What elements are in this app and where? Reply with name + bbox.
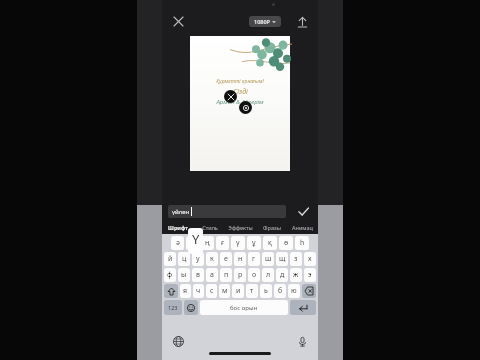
staticText: 1080P xyxy=(254,18,270,25)
button[interactable]: т xyxy=(246,284,258,298)
button[interactable]: ө xyxy=(279,236,293,250)
staticText: ә xyxy=(176,238,180,248)
button[interactable]: Фразы xyxy=(256,221,287,234)
staticText: ч xyxy=(196,286,201,296)
button[interactable]: ң xyxy=(201,236,214,250)
staticText: Сізді xyxy=(233,87,248,97)
staticText: қ xyxy=(268,238,272,248)
button[interactable]: Return xyxy=(290,300,316,315)
button[interactable]: ы xyxy=(178,268,190,282)
button[interactable]: у xyxy=(192,252,204,266)
button[interactable]: ж xyxy=(290,268,302,282)
button[interactable]: с xyxy=(206,284,217,298)
button[interactable]: қ xyxy=(263,236,277,250)
staticText: щ xyxy=(279,254,286,264)
button[interactable]: з xyxy=(290,252,302,266)
staticText: з xyxy=(294,254,298,264)
button[interactable]: Emoji xyxy=(184,300,198,315)
staticText: к xyxy=(210,254,214,264)
staticText: в xyxy=(196,270,200,280)
button[interactable]: н xyxy=(234,252,246,266)
button[interactable]: ц xyxy=(178,252,190,266)
button[interactable]: ү xyxy=(231,236,245,250)
staticText: ү xyxy=(236,238,240,248)
staticText: үйлен xyxy=(172,208,190,216)
button[interactable]: бос орын xyxy=(200,300,288,315)
staticText: э xyxy=(308,270,312,280)
staticText: а xyxy=(210,270,214,280)
button[interactable]: ф xyxy=(164,268,176,282)
button[interactable]: п xyxy=(220,268,232,282)
button[interactable]: э xyxy=(304,268,316,282)
button[interactable]: щ xyxy=(276,252,288,266)
staticText: ң xyxy=(205,238,210,248)
staticText: н xyxy=(238,254,243,264)
button[interactable]: ұ xyxy=(247,236,261,250)
staticText: бос орын xyxy=(230,304,258,312)
button[interactable]: й xyxy=(164,252,176,266)
staticText: й xyxy=(168,254,173,264)
staticText: ү xyxy=(191,238,195,248)
button[interactable]: Change keyboard xyxy=(170,333,186,349)
button[interactable]: к xyxy=(206,252,218,266)
button[interactable]: үйлен xyxy=(168,205,286,218)
button[interactable]: ч xyxy=(193,284,204,298)
button[interactable]: д xyxy=(276,268,288,282)
staticText: с xyxy=(210,286,214,296)
button[interactable]: Close xyxy=(169,12,187,30)
button[interactable]: ә xyxy=(171,236,184,250)
staticText: л xyxy=(266,270,271,280)
button[interactable]: я xyxy=(180,284,191,298)
button[interactable]: Delete layer xyxy=(224,90,237,103)
staticText: ғ xyxy=(221,238,225,248)
button[interactable]: Rotate layer xyxy=(239,101,252,114)
staticText: һ xyxy=(300,238,305,248)
button[interactable]: 1080P xyxy=(249,16,281,27)
button[interactable]: ю xyxy=(288,284,300,298)
button[interactable]: Numbers xyxy=(164,300,182,315)
button[interactable]: а xyxy=(206,268,218,282)
button[interactable]: б xyxy=(274,284,286,298)
button[interactable]: ү xyxy=(186,236,199,250)
button[interactable]: Эффекты xyxy=(225,221,256,234)
button[interactable]: р xyxy=(234,268,246,282)
button[interactable]: и xyxy=(232,284,244,298)
button[interactable]: Backspace xyxy=(302,284,316,298)
button[interactable]: е xyxy=(220,252,232,266)
button[interactable]: г xyxy=(248,252,260,266)
button[interactable]: м xyxy=(219,284,230,298)
staticText: я xyxy=(183,286,188,296)
staticText: ш xyxy=(265,254,272,264)
staticText: ө xyxy=(284,238,289,248)
staticText: р xyxy=(238,270,243,280)
staticText: ұ xyxy=(252,238,256,248)
staticText: т xyxy=(250,286,254,296)
button[interactable]: ш xyxy=(262,252,274,266)
button[interactable]: Стиль xyxy=(194,221,225,234)
button[interactable]: Export xyxy=(293,12,311,30)
staticText: ю xyxy=(291,286,297,296)
button[interactable]: һ xyxy=(295,236,309,250)
button[interactable]: Шрифт xyxy=(162,221,194,234)
staticText: ь xyxy=(264,286,268,296)
button[interactable]: ғ xyxy=(216,236,229,250)
button[interactable]: Shift xyxy=(164,284,178,298)
button[interactable]: ь xyxy=(260,284,272,298)
button[interactable]: в xyxy=(192,268,204,282)
staticText: у xyxy=(196,254,200,264)
staticText: Анимац xyxy=(292,224,313,231)
staticText: е xyxy=(224,254,228,264)
button[interactable]: л xyxy=(262,268,274,282)
button[interactable]: Анимац xyxy=(287,221,318,234)
staticText: Фразы xyxy=(263,224,281,231)
button[interactable]: х xyxy=(304,252,316,266)
staticText: 123 xyxy=(168,304,178,311)
staticText: и xyxy=(236,286,241,296)
staticText: Ү xyxy=(192,230,200,248)
button[interactable]: Done xyxy=(294,202,312,220)
staticText: х xyxy=(308,254,312,264)
button[interactable]: Dictation xyxy=(294,333,310,349)
staticText: ц xyxy=(182,254,187,264)
button[interactable]: о xyxy=(248,268,260,282)
staticText: п xyxy=(224,270,229,280)
